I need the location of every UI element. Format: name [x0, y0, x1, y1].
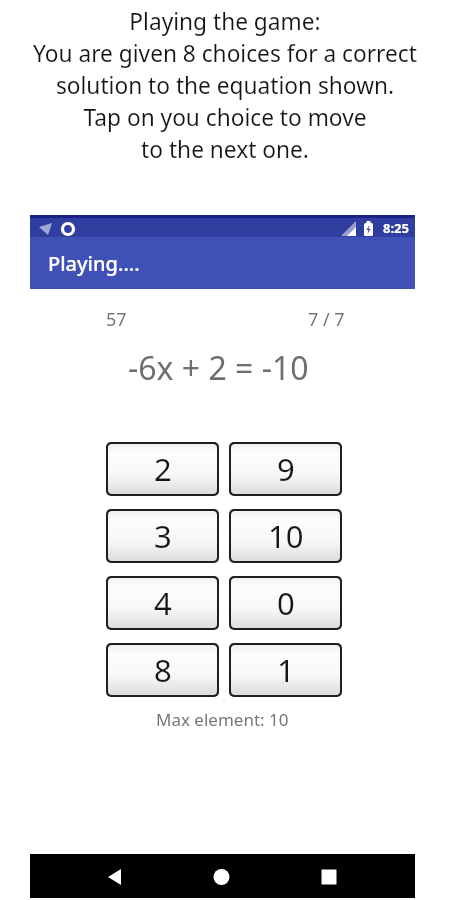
button[interactable]: [287, 854, 415, 898]
button[interactable]: 1: [231, 645, 340, 695]
button[interactable]: 9: [231, 444, 340, 494]
staticText: Playing....: [48, 250, 140, 277]
staticText: 7 / 7: [308, 307, 345, 332]
button[interactable]: 0: [231, 578, 340, 628]
button[interactable]: 10: [231, 511, 340, 561]
staticText: 3: [154, 515, 172, 557]
staticText: Max element: 10: [156, 708, 289, 731]
button[interactable]: 4: [108, 578, 217, 628]
button[interactable]: 3: [108, 511, 217, 561]
staticText: Playing the game: You are given 8 choice…: [0, 6, 450, 165]
staticText: 9: [277, 448, 295, 490]
button[interactable]: 8: [108, 645, 217, 695]
button[interactable]: 2: [108, 444, 217, 494]
staticText: 8:25: [383, 219, 409, 237]
staticText: 8: [154, 649, 172, 691]
staticText: 2: [154, 448, 172, 490]
staticText: 0: [277, 582, 295, 624]
staticText: 1: [277, 649, 295, 691]
staticText: 10: [268, 515, 304, 557]
staticText: 4: [154, 582, 172, 624]
button[interactable]: [159, 854, 287, 898]
staticText: 57: [106, 307, 127, 332]
button[interactable]: [30, 854, 159, 898]
staticText: -6x + 2 = -10: [128, 346, 309, 390]
